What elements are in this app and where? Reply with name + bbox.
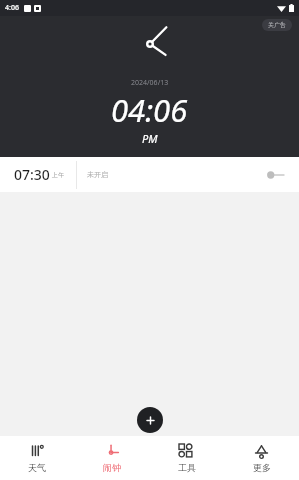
staticText: PM: [142, 131, 158, 146]
staticText: 4:06: [5, 3, 19, 13]
button[interactable]: Add alarm: [137, 407, 163, 433]
staticText: 07:30: [14, 165, 50, 184]
button[interactable]: Toggle alarm: [265, 168, 287, 182]
button[interactable]: 更多: [224, 436, 299, 480]
staticText: 上午: [52, 171, 64, 179]
staticText: 天气: [28, 462, 46, 473]
button[interactable]: 关广告: [262, 19, 292, 31]
staticText: 04:06: [111, 89, 188, 131]
staticText: 更多: [253, 462, 271, 473]
staticText: 关广告: [268, 21, 286, 29]
staticText: 未开启: [87, 170, 108, 179]
button[interactable]: 天气: [0, 436, 74, 480]
button[interactable]: 闹钟: [74, 436, 149, 480]
staticText: 2024/06/13: [131, 78, 169, 88]
button[interactable]: 工具: [149, 436, 224, 480]
button[interactable]: 07:30: [0, 157, 299, 192]
staticText: 工具: [178, 462, 196, 473]
staticText: 闹钟: [103, 462, 121, 473]
